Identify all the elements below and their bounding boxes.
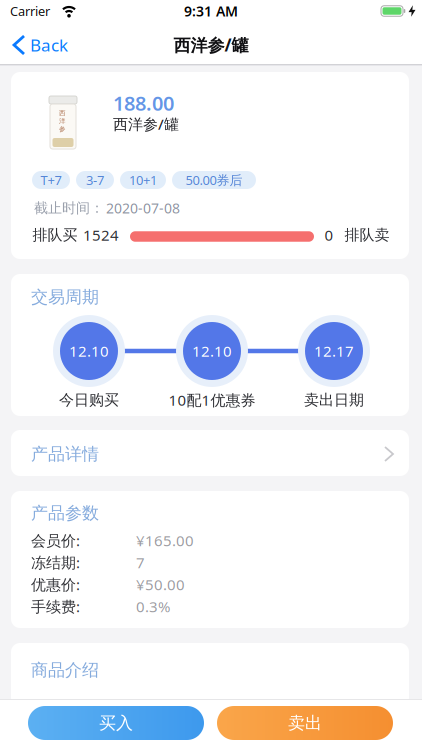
staticText: 188.00 [113,90,174,116]
staticText: 手续费: [31,596,80,616]
staticText: 3-7 [86,171,104,189]
staticText: 优惠价: [31,574,80,594]
staticText: 1524 [83,225,119,245]
staticText: 10+1 [129,171,157,189]
staticText: 参 [59,125,66,133]
staticText: 12.17 [314,341,354,361]
button[interactable]: 买入 [28,706,204,740]
staticText: 买入 [99,713,133,733]
staticText: 12.10 [192,341,232,361]
staticText: 截止时间： [34,199,104,217]
staticText: 排队卖 [344,226,389,244]
staticText: 0 [324,225,333,245]
staticText: 今日购买 [59,391,119,409]
staticText: 0.3% [136,596,170,616]
staticText: 7 [136,552,145,572]
staticText: 12.10 [69,341,109,361]
staticText: 卖出日期 [304,391,364,409]
staticText: 交易周期 [31,287,99,307]
staticText: 西洋参/罐 [113,114,179,134]
staticText: 卖出 [288,713,322,733]
staticText: T+7 [40,171,61,189]
staticText: 洋 [59,117,66,125]
staticText: 50.00券后 [185,171,242,189]
staticText: ¥50.00 [136,574,185,594]
staticText: 排队买 [32,226,77,244]
button[interactable]: 卖出 [217,706,393,740]
staticText: Back [30,34,68,56]
staticText: Carrier [10,2,50,19]
staticText: 10配1优惠券 [168,390,255,410]
staticText: 产品参数 [31,503,99,523]
staticText: 产品详情 [31,444,99,464]
staticText: 冻结期: [31,552,80,572]
staticText: 西洋参/罐 [173,34,248,56]
staticText: 西 [59,109,66,117]
button[interactable]: 产品详情 [11,430,409,476]
staticText: 商品介绍 [31,660,99,680]
staticText: 会员价: [31,530,80,550]
staticText: ¥165.00 [136,530,194,550]
button[interactable]: Back [14,29,104,61]
staticText: 2020-07-08 [106,199,180,217]
staticText: 9:31 AM [184,2,238,20]
